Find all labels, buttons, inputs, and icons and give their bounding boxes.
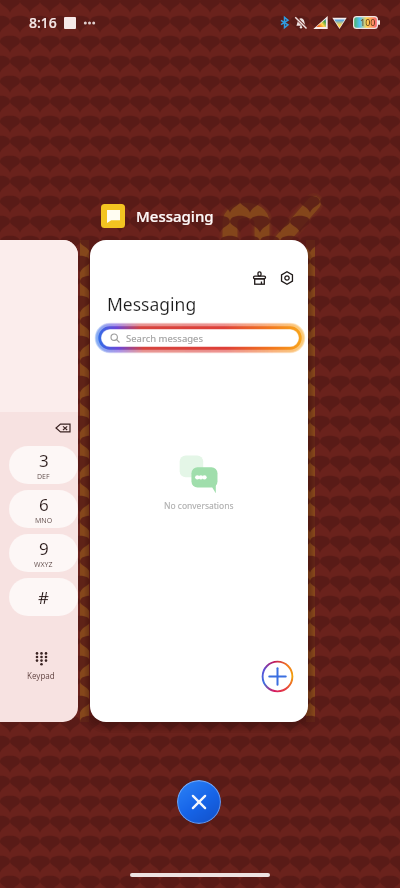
staticText: 8:16 (29, 13, 57, 32)
staticText: Messaging (107, 292, 197, 316)
button[interactable]: 6 (9, 490, 78, 528)
button[interactable]: # (9, 578, 78, 616)
staticText: 3 (39, 449, 49, 472)
staticText: MNO (35, 516, 53, 526)
button[interactable]: 3 (9, 446, 78, 484)
button[interactable]: Theme (246, 265, 272, 291)
staticText: Messaging (136, 206, 214, 226)
button[interactable]: Backspace (0, 240, 78, 722)
button[interactable]: 9 (9, 534, 78, 572)
staticText: 6 (39, 493, 49, 516)
staticText: 9 (39, 537, 49, 560)
button[interactable]: Backspace (54, 419, 72, 437)
button[interactable]: Theme (90, 240, 308, 722)
staticText: Search messages (126, 332, 203, 345)
staticText: No conversations (164, 500, 234, 512)
button[interactable]: Close all (177, 780, 221, 824)
staticText: 100 (360, 16, 376, 28)
button[interactable]: New conversation (261, 660, 294, 693)
staticText: Keypad (27, 670, 55, 681)
button[interactable]: Search messages (98, 326, 302, 350)
staticText: WXYZ (34, 560, 53, 570)
button[interactable]: Settings (274, 265, 300, 291)
staticText: DEF (37, 472, 50, 482)
staticText: # (38, 586, 49, 609)
